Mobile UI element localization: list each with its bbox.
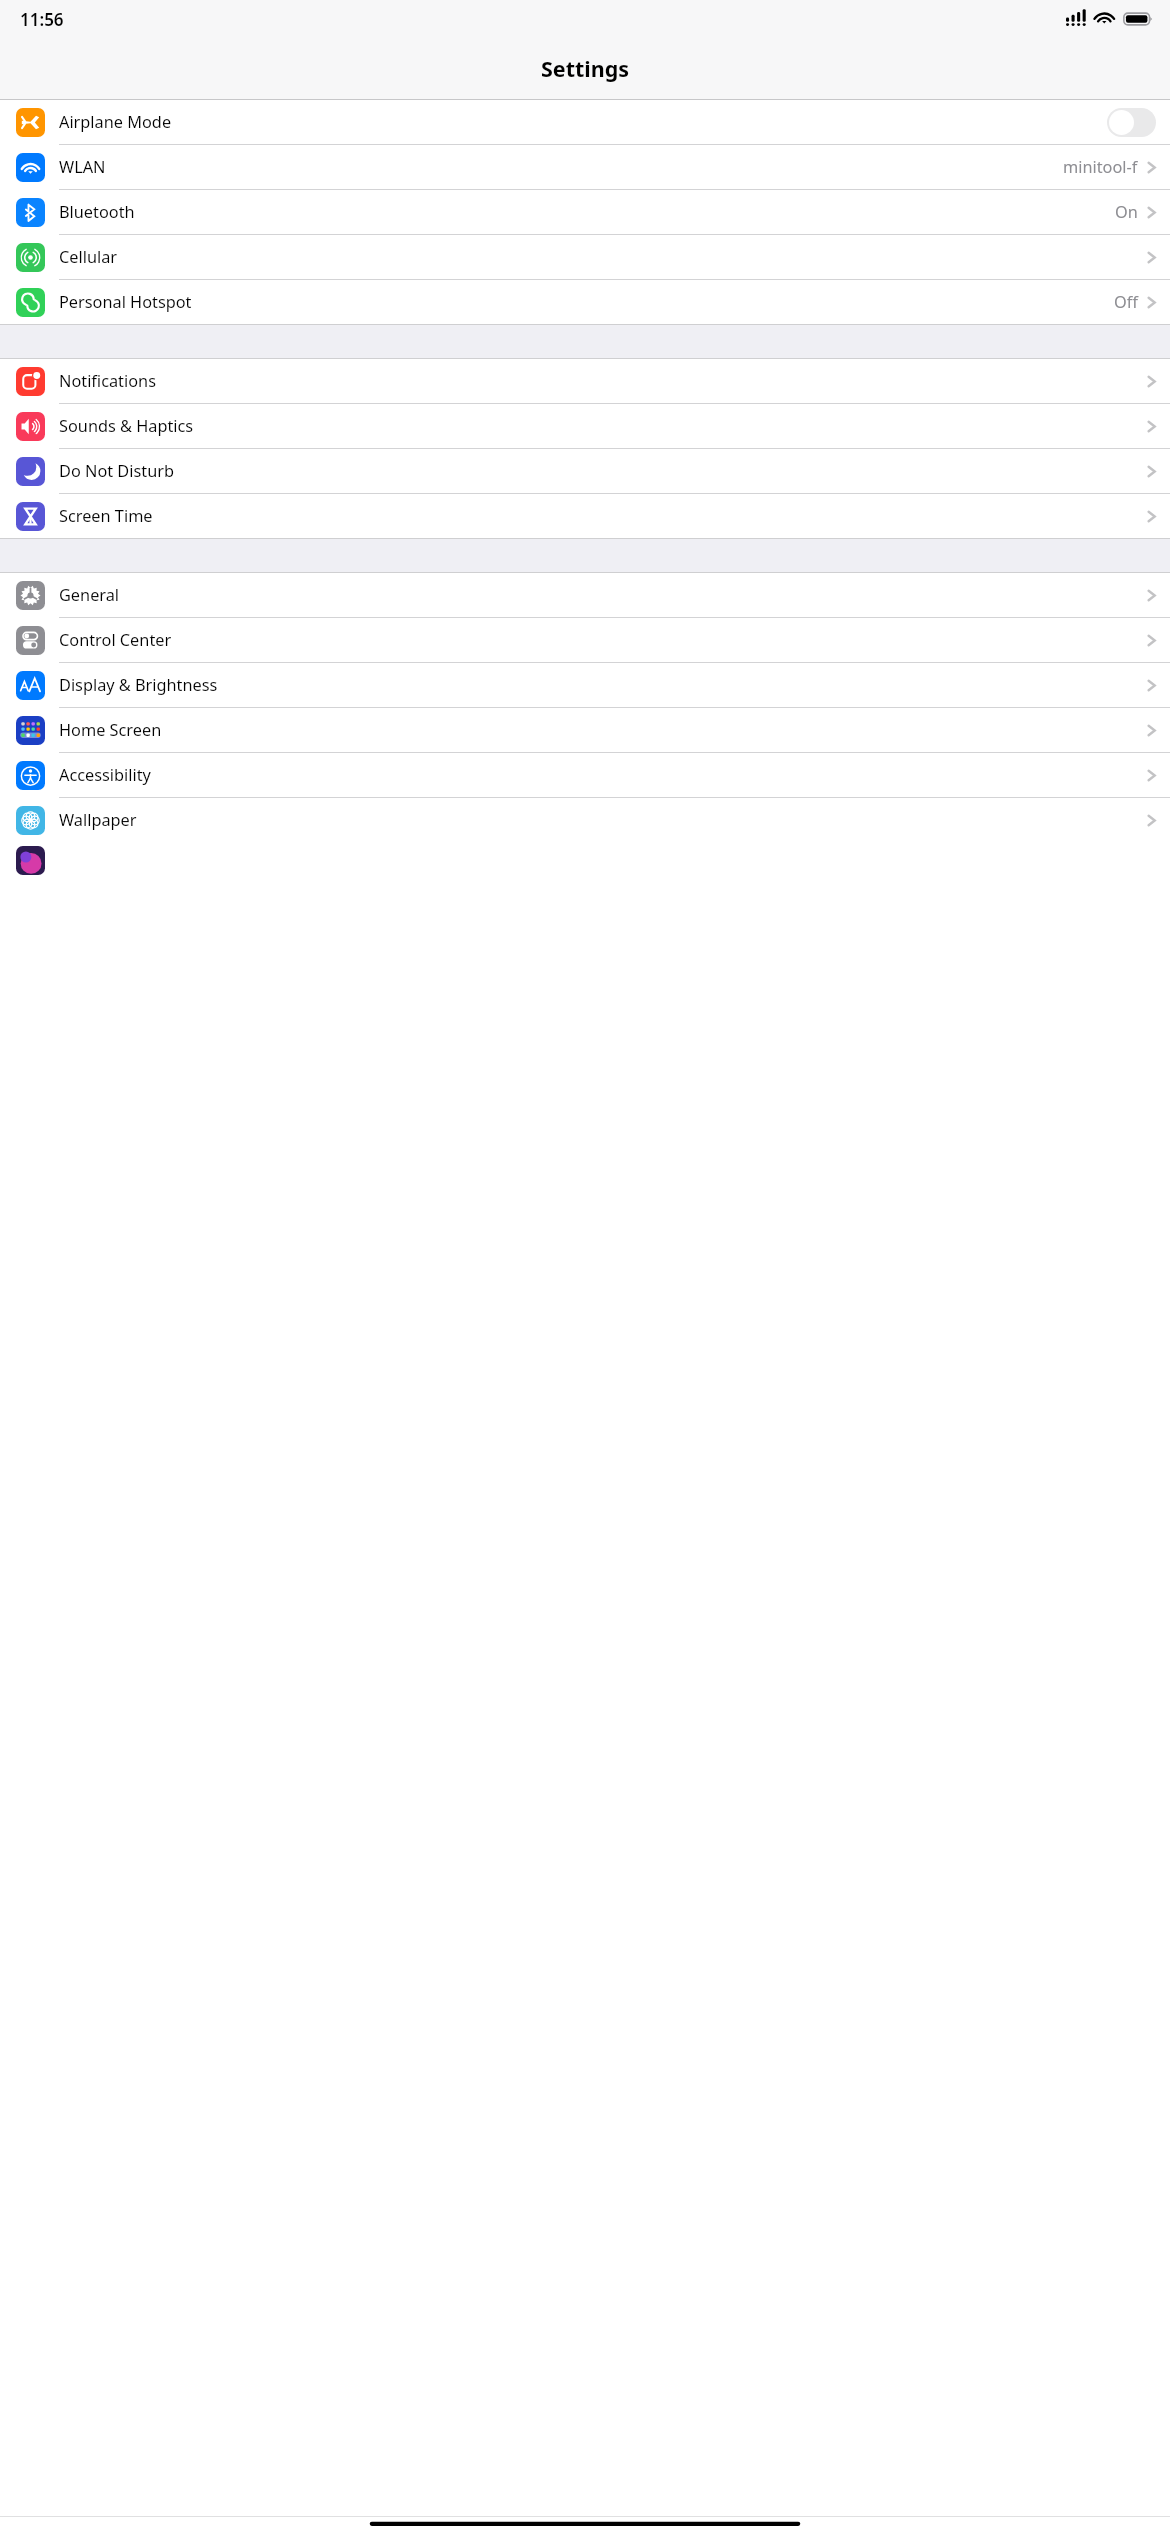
button[interactable]: WLAN <box>0 145 1170 190</box>
staticText: Personal Hotspot <box>59 291 192 313</box>
button[interactable]: Notifications <box>0 359 1170 404</box>
button[interactable]: Airplane Mode <box>0 100 1170 145</box>
button[interactable]: Display & Brightness <box>0 663 1170 708</box>
staticText: WLAN <box>59 156 106 178</box>
button[interactable]: Control Center <box>0 618 1170 663</box>
staticText: Cellular <box>59 246 118 268</box>
staticText: Settings <box>541 54 630 83</box>
staticText: On <box>1115 201 1138 223</box>
staticText: Bluetooth <box>59 201 135 223</box>
staticText: Do Not Disturb <box>59 460 174 482</box>
staticText: minitool-f <box>1063 156 1138 178</box>
button[interactable]: Home Screen <box>0 708 1170 753</box>
button[interactable]: Sounds & Haptics <box>0 404 1170 449</box>
button[interactable]: Personal Hotspot <box>0 280 1170 324</box>
staticText: Control Center <box>59 629 172 651</box>
staticText: Notifications <box>59 370 156 392</box>
staticText: Wallpaper <box>59 809 137 831</box>
button[interactable]: Accessibility <box>0 753 1170 798</box>
staticText: Display & Brightness <box>59 674 218 696</box>
staticText: Home Screen <box>59 719 162 741</box>
staticText: General <box>59 584 120 606</box>
staticText: Airplane Mode <box>59 111 172 133</box>
button[interactable]: Wallpaper <box>0 798 1170 842</box>
button[interactable]: Screen Time <box>0 494 1170 538</box>
button[interactable]: Airplane Mode toggle, off <box>1107 108 1156 137</box>
button[interactable]: Cellular <box>0 235 1170 280</box>
staticText: Off <box>1114 291 1138 313</box>
button[interactable]: Bluetooth <box>0 190 1170 235</box>
staticText: 11:56 <box>20 8 64 31</box>
staticText: Accessibility <box>59 764 151 786</box>
staticText: Sounds & Haptics <box>59 415 194 437</box>
button[interactable]: Do Not Disturb <box>0 449 1170 494</box>
button[interactable]: General <box>0 573 1170 618</box>
staticText: Screen Time <box>59 505 153 527</box>
